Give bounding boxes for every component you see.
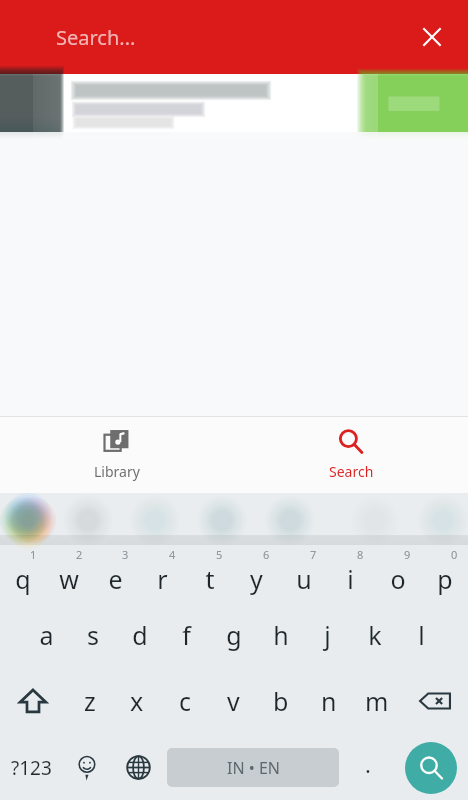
staticText: k — [368, 618, 382, 652]
staticText: m — [365, 684, 389, 718]
staticText: b — [273, 684, 289, 718]
staticText: r — [157, 562, 168, 596]
staticText: p — [437, 562, 453, 596]
button[interactable]: ?123 — [0, 735, 63, 800]
staticText: Search — [329, 462, 374, 481]
button[interactable]: g — [210, 602, 257, 667]
staticText: w — [59, 562, 79, 596]
button[interactable]: Shift — [0, 667, 66, 735]
staticText: u — [296, 562, 312, 596]
staticText: a — [39, 618, 54, 652]
staticText: 9 — [404, 547, 411, 562]
button[interactable]: Search... — [56, 24, 398, 51]
staticText: Library — [94, 462, 140, 481]
staticText: f — [182, 618, 191, 652]
staticText: 5 — [216, 547, 223, 562]
staticText: q — [15, 562, 31, 596]
button[interactable]: d — [116, 602, 163, 667]
button[interactable]: m — [353, 667, 401, 735]
button[interactable]: Backspace — [401, 667, 468, 735]
button[interactable]: 9 — [374, 545, 421, 602]
button[interactable]: 6 — [233, 545, 280, 602]
button[interactable]: 2 — [46, 545, 92, 602]
button[interactable]: 0 — [421, 545, 468, 602]
staticText: s — [87, 618, 99, 652]
button[interactable]: k — [351, 602, 398, 667]
button[interactable]: l — [398, 602, 445, 667]
staticText: n — [321, 684, 337, 718]
staticText: Search... — [56, 24, 136, 51]
staticText: IN • EN — [227, 757, 280, 779]
button[interactable]: Search — [405, 742, 457, 794]
staticText: 4 — [169, 547, 176, 562]
button[interactable]: Change language — [113, 735, 163, 800]
staticText: z — [84, 684, 96, 718]
button[interactable]: Search — [234, 417, 468, 493]
staticText: j — [324, 618, 331, 652]
button[interactable]: f — [163, 602, 210, 667]
button[interactable]: v — [209, 667, 257, 735]
button[interactable]: 5 — [186, 545, 233, 602]
button[interactable]: j — [304, 602, 351, 667]
staticText: 0 — [451, 547, 458, 562]
staticText: 3 — [122, 547, 129, 562]
button[interactable]: Close search — [410, 15, 454, 59]
button[interactable]: c — [161, 667, 209, 735]
staticText: 1 — [30, 547, 37, 562]
staticText: 7 — [310, 547, 317, 562]
staticText: l — [418, 618, 425, 652]
staticText: 2 — [76, 547, 83, 562]
staticText: y — [250, 562, 263, 596]
staticText: g — [226, 618, 242, 652]
button[interactable]: h — [257, 602, 304, 667]
button[interactable]: . — [343, 735, 393, 800]
staticText: 8 — [357, 547, 364, 562]
staticText: . — [365, 749, 371, 779]
button[interactable]: b — [257, 667, 305, 735]
staticText: h — [273, 618, 289, 652]
staticText: x — [130, 684, 144, 718]
staticText: ?123 — [11, 755, 52, 781]
staticText: e — [108, 562, 123, 596]
button[interactable]: s — [69, 602, 116, 667]
button[interactable]: n — [305, 667, 353, 735]
staticText: d — [132, 618, 148, 652]
button[interactable]: a — [23, 602, 69, 667]
button[interactable] — [0, 74, 468, 140]
button[interactable]: 4 — [139, 545, 186, 602]
button[interactable]: x — [113, 667, 161, 735]
staticText: v — [227, 684, 240, 718]
button[interactable]: z — [66, 667, 113, 735]
button[interactable]: 7 — [280, 545, 327, 602]
staticText: 6 — [263, 547, 270, 562]
staticText: o — [390, 562, 406, 596]
button[interactable]: IN • EN — [167, 748, 339, 787]
button[interactable]: 1 — [0, 545, 46, 602]
button[interactable]: Library — [0, 417, 234, 493]
button[interactable]: Emoji — [63, 735, 113, 800]
staticText: i — [347, 562, 354, 596]
staticText: t — [205, 562, 215, 596]
button[interactable]: 3 — [92, 545, 139, 602]
staticText: c — [179, 684, 192, 718]
button[interactable]: 8 — [327, 545, 374, 602]
